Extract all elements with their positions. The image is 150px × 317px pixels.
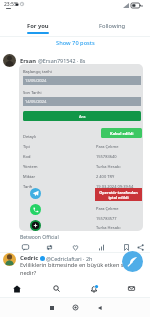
staticText: Evliliklerin bitmesinde en büyük etken s… [20, 261, 142, 277]
staticText: Cedric [20, 254, 39, 262]
staticText: 19.03.2024 09:39:54 [96, 184, 134, 189]
button[interactable]: Views [96, 242, 106, 252]
button[interactable]: Recents [42, 298, 62, 317]
staticText: 13/05/2024 [25, 78, 47, 83]
button[interactable]: Home [65, 298, 85, 317]
button[interactable]: Compose post [122, 251, 143, 272]
staticText: Show 70 posts [56, 39, 95, 47]
button[interactable]: Share [135, 242, 145, 252]
staticText: 155783640 [96, 154, 117, 159]
staticText: Kabul edildi [110, 131, 134, 136]
staticText: @Cedriclaftari · 2h [46, 255, 93, 262]
staticText: Para Çekme [96, 206, 119, 211]
button[interactable]: Home [7, 279, 27, 298]
staticText: Operatör tarafından iptal edildi [99, 190, 138, 200]
button[interactable]: Bookmark [121, 242, 131, 252]
button[interactable]: Search [46, 279, 66, 298]
button[interactable]: Back [90, 298, 110, 317]
button[interactable]: Show 70 posts [0, 37, 150, 49]
staticText: Ara [79, 114, 86, 119]
staticText: Ersan [20, 57, 36, 65]
button[interactable]: Reply [20, 242, 30, 252]
staticText: 23:55 [4, 1, 17, 8]
staticText: Tipi [23, 144, 30, 149]
button[interactable]: Ara [23, 111, 141, 121]
staticText: Miktar [23, 174, 36, 179]
staticText: Betwoon Official [20, 234, 59, 241]
staticText: Following [99, 22, 126, 30]
button[interactable]: Messages [121, 279, 141, 298]
button[interactable]: Notifications [84, 279, 104, 298]
staticText: Yöntem [23, 164, 38, 169]
staticText: @Ersan791542 · 8s [38, 57, 86, 64]
staticText: For you [27, 22, 49, 30]
staticText: 2 400 TRY [96, 174, 115, 179]
staticText: 14/05/2024 [25, 99, 47, 104]
staticText: 155783577 [96, 216, 117, 221]
staticText: Son Tarihi [23, 90, 42, 95]
button[interactable]: For you [0, 14, 75, 36]
button[interactable]: Repost [44, 242, 54, 252]
button[interactable]: Cedric profile [3, 253, 16, 266]
staticText: Tarih [23, 184, 33, 189]
button[interactable]: Ersan profile [3, 54, 16, 67]
button[interactable]: Like [70, 242, 80, 252]
button[interactable]: Following [75, 14, 150, 36]
staticText: Para Çekme [96, 144, 119, 149]
staticText: Kod [23, 154, 31, 159]
staticText: Turka Hesabı [96, 164, 121, 169]
staticText: Detaylı [23, 134, 36, 139]
staticText: Turka Hesabı [96, 225, 121, 230]
staticText: Başlangıç tarihi [23, 69, 52, 74]
